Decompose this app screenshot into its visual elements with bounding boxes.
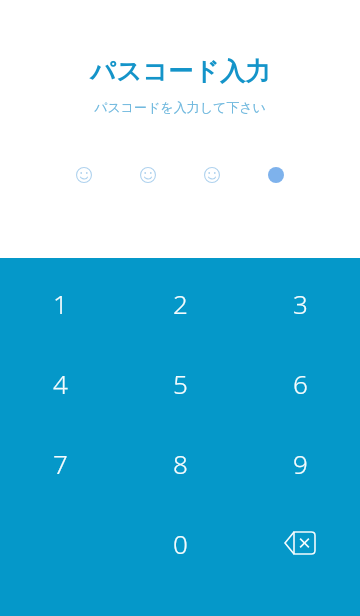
staticText: 3 [293, 286, 308, 321]
staticText: 5 [173, 366, 188, 401]
button[interactable]: 5 [120, 363, 240, 403]
button[interactable]: 9 [240, 443, 360, 483]
staticText: 9 [293, 446, 308, 481]
button[interactable]: 0 [120, 523, 240, 563]
staticText: パスコード入力 [90, 56, 271, 87]
staticText: 2 [173, 286, 188, 321]
button[interactable]: 6 [240, 363, 360, 403]
staticText: パスコードを入力して下さい [94, 99, 266, 115]
button[interactable]: 4 [0, 363, 120, 403]
staticText: 7 [53, 446, 68, 481]
staticText: 8 [173, 446, 188, 481]
button[interactable]: Backspace [240, 523, 360, 563]
staticText: 0 [173, 526, 188, 561]
button[interactable]: 1 [0, 283, 120, 323]
button[interactable]: 7 [0, 443, 120, 483]
button[interactable]: 2 [120, 283, 240, 323]
staticText: 6 [293, 366, 308, 401]
button[interactable]: 3 [240, 283, 360, 323]
button[interactable]: 8 [120, 443, 240, 483]
staticText: 1 [53, 286, 68, 321]
staticText: 4 [53, 366, 68, 401]
